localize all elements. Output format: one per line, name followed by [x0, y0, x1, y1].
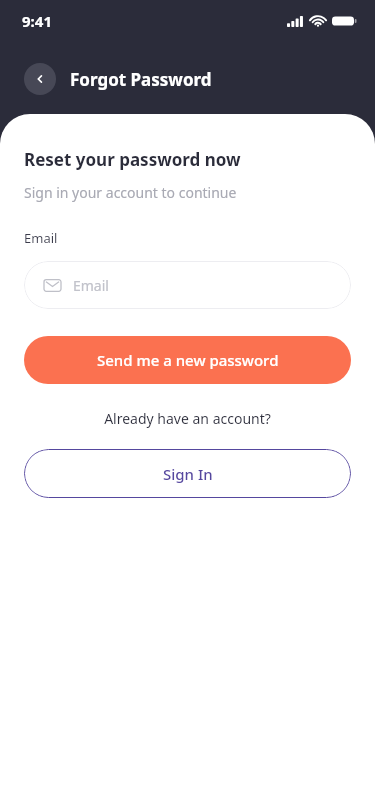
staticText: 9:41 — [22, 11, 52, 31]
staticText: Already have an account? — [104, 409, 271, 428]
staticText: Send me a new password — [97, 350, 279, 370]
button[interactable]: Sign In — [24, 449, 351, 498]
staticText: Reset your password now — [24, 148, 241, 171]
button[interactable]: Back — [24, 63, 56, 95]
staticText: Email — [73, 276, 109, 295]
staticText: Email — [24, 229, 58, 247]
button[interactable]: Email — [24, 261, 351, 309]
staticText: Sign In — [163, 464, 213, 484]
staticText: Sign in your account to continue — [24, 183, 237, 202]
button[interactable]: Send me a new password — [24, 336, 351, 384]
staticText: Forgot Password — [70, 68, 212, 91]
